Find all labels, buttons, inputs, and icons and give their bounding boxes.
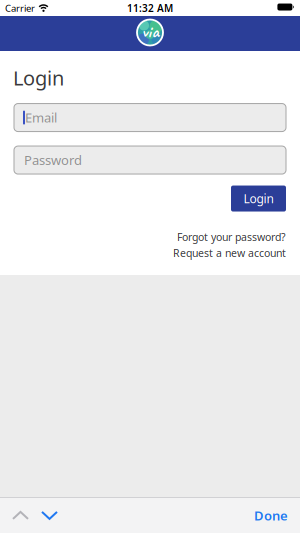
button[interactable]: Next field <box>41 510 58 520</box>
staticText: Password <box>24 151 82 169</box>
button[interactable]: Previous field <box>12 510 29 520</box>
staticText: Email <box>25 109 57 126</box>
staticText: 11:32 AM <box>127 1 173 15</box>
staticText: Carrier <box>5 2 35 14</box>
button[interactable]: Login <box>231 186 286 212</box>
button[interactable]: Done <box>254 507 288 524</box>
staticText: Done <box>254 507 288 524</box>
staticText: Login <box>243 191 273 206</box>
button[interactable]: Forgot your password? <box>177 230 286 244</box>
staticText: via <box>141 20 158 43</box>
button[interactable]: Request a new account <box>173 246 286 260</box>
staticText: Request a new account <box>173 246 286 260</box>
staticText: Forgot your password? <box>177 230 286 244</box>
staticText: Login <box>13 64 64 91</box>
